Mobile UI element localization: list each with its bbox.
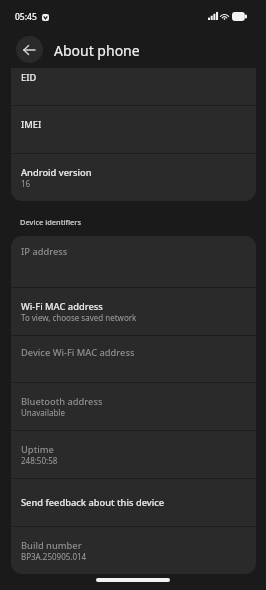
staticText: Wi-Fi MAC address — [21, 300, 103, 313]
button[interactable]: Uptime — [11, 431, 256, 478]
button[interactable]: Back — [16, 36, 43, 63]
staticText: Unavailable — [21, 407, 65, 418]
staticText: Uptime — [21, 443, 54, 456]
staticText: Build number — [21, 539, 82, 552]
staticText: Send feedback about this device — [21, 496, 165, 509]
staticText: 248:50:58 — [21, 455, 58, 466]
staticText: 16 — [21, 178, 31, 189]
button[interactable]: Send feedback about this device — [11, 479, 256, 526]
button[interactable]: Bluetooth address — [11, 383, 256, 430]
button[interactable]: IMEI — [11, 106, 256, 153]
staticText: To view, choose saved network — [21, 312, 137, 323]
staticText: IMEI — [21, 118, 42, 131]
staticText: 05:45 — [15, 11, 37, 23]
staticText: Bluetooth address — [21, 395, 103, 408]
staticText: IP address — [21, 245, 68, 258]
staticText: Android version — [21, 166, 92, 179]
button[interactable]: Android version — [11, 154, 256, 201]
button[interactable]: Device Wi-Fi MAC address — [11, 336, 256, 382]
button[interactable]: IP address — [11, 236, 256, 287]
staticText: Device identifiers — [20, 217, 82, 227]
staticText: EID — [21, 71, 37, 84]
staticText: About phone — [54, 41, 140, 60]
staticText: BP3A.250905.014 — [21, 551, 87, 562]
button[interactable]: EID — [11, 68, 256, 105]
staticText: Device Wi-Fi MAC address — [21, 346, 135, 359]
button[interactable]: Build number — [11, 527, 256, 574]
button[interactable]: Wi-Fi MAC address — [11, 288, 256, 335]
